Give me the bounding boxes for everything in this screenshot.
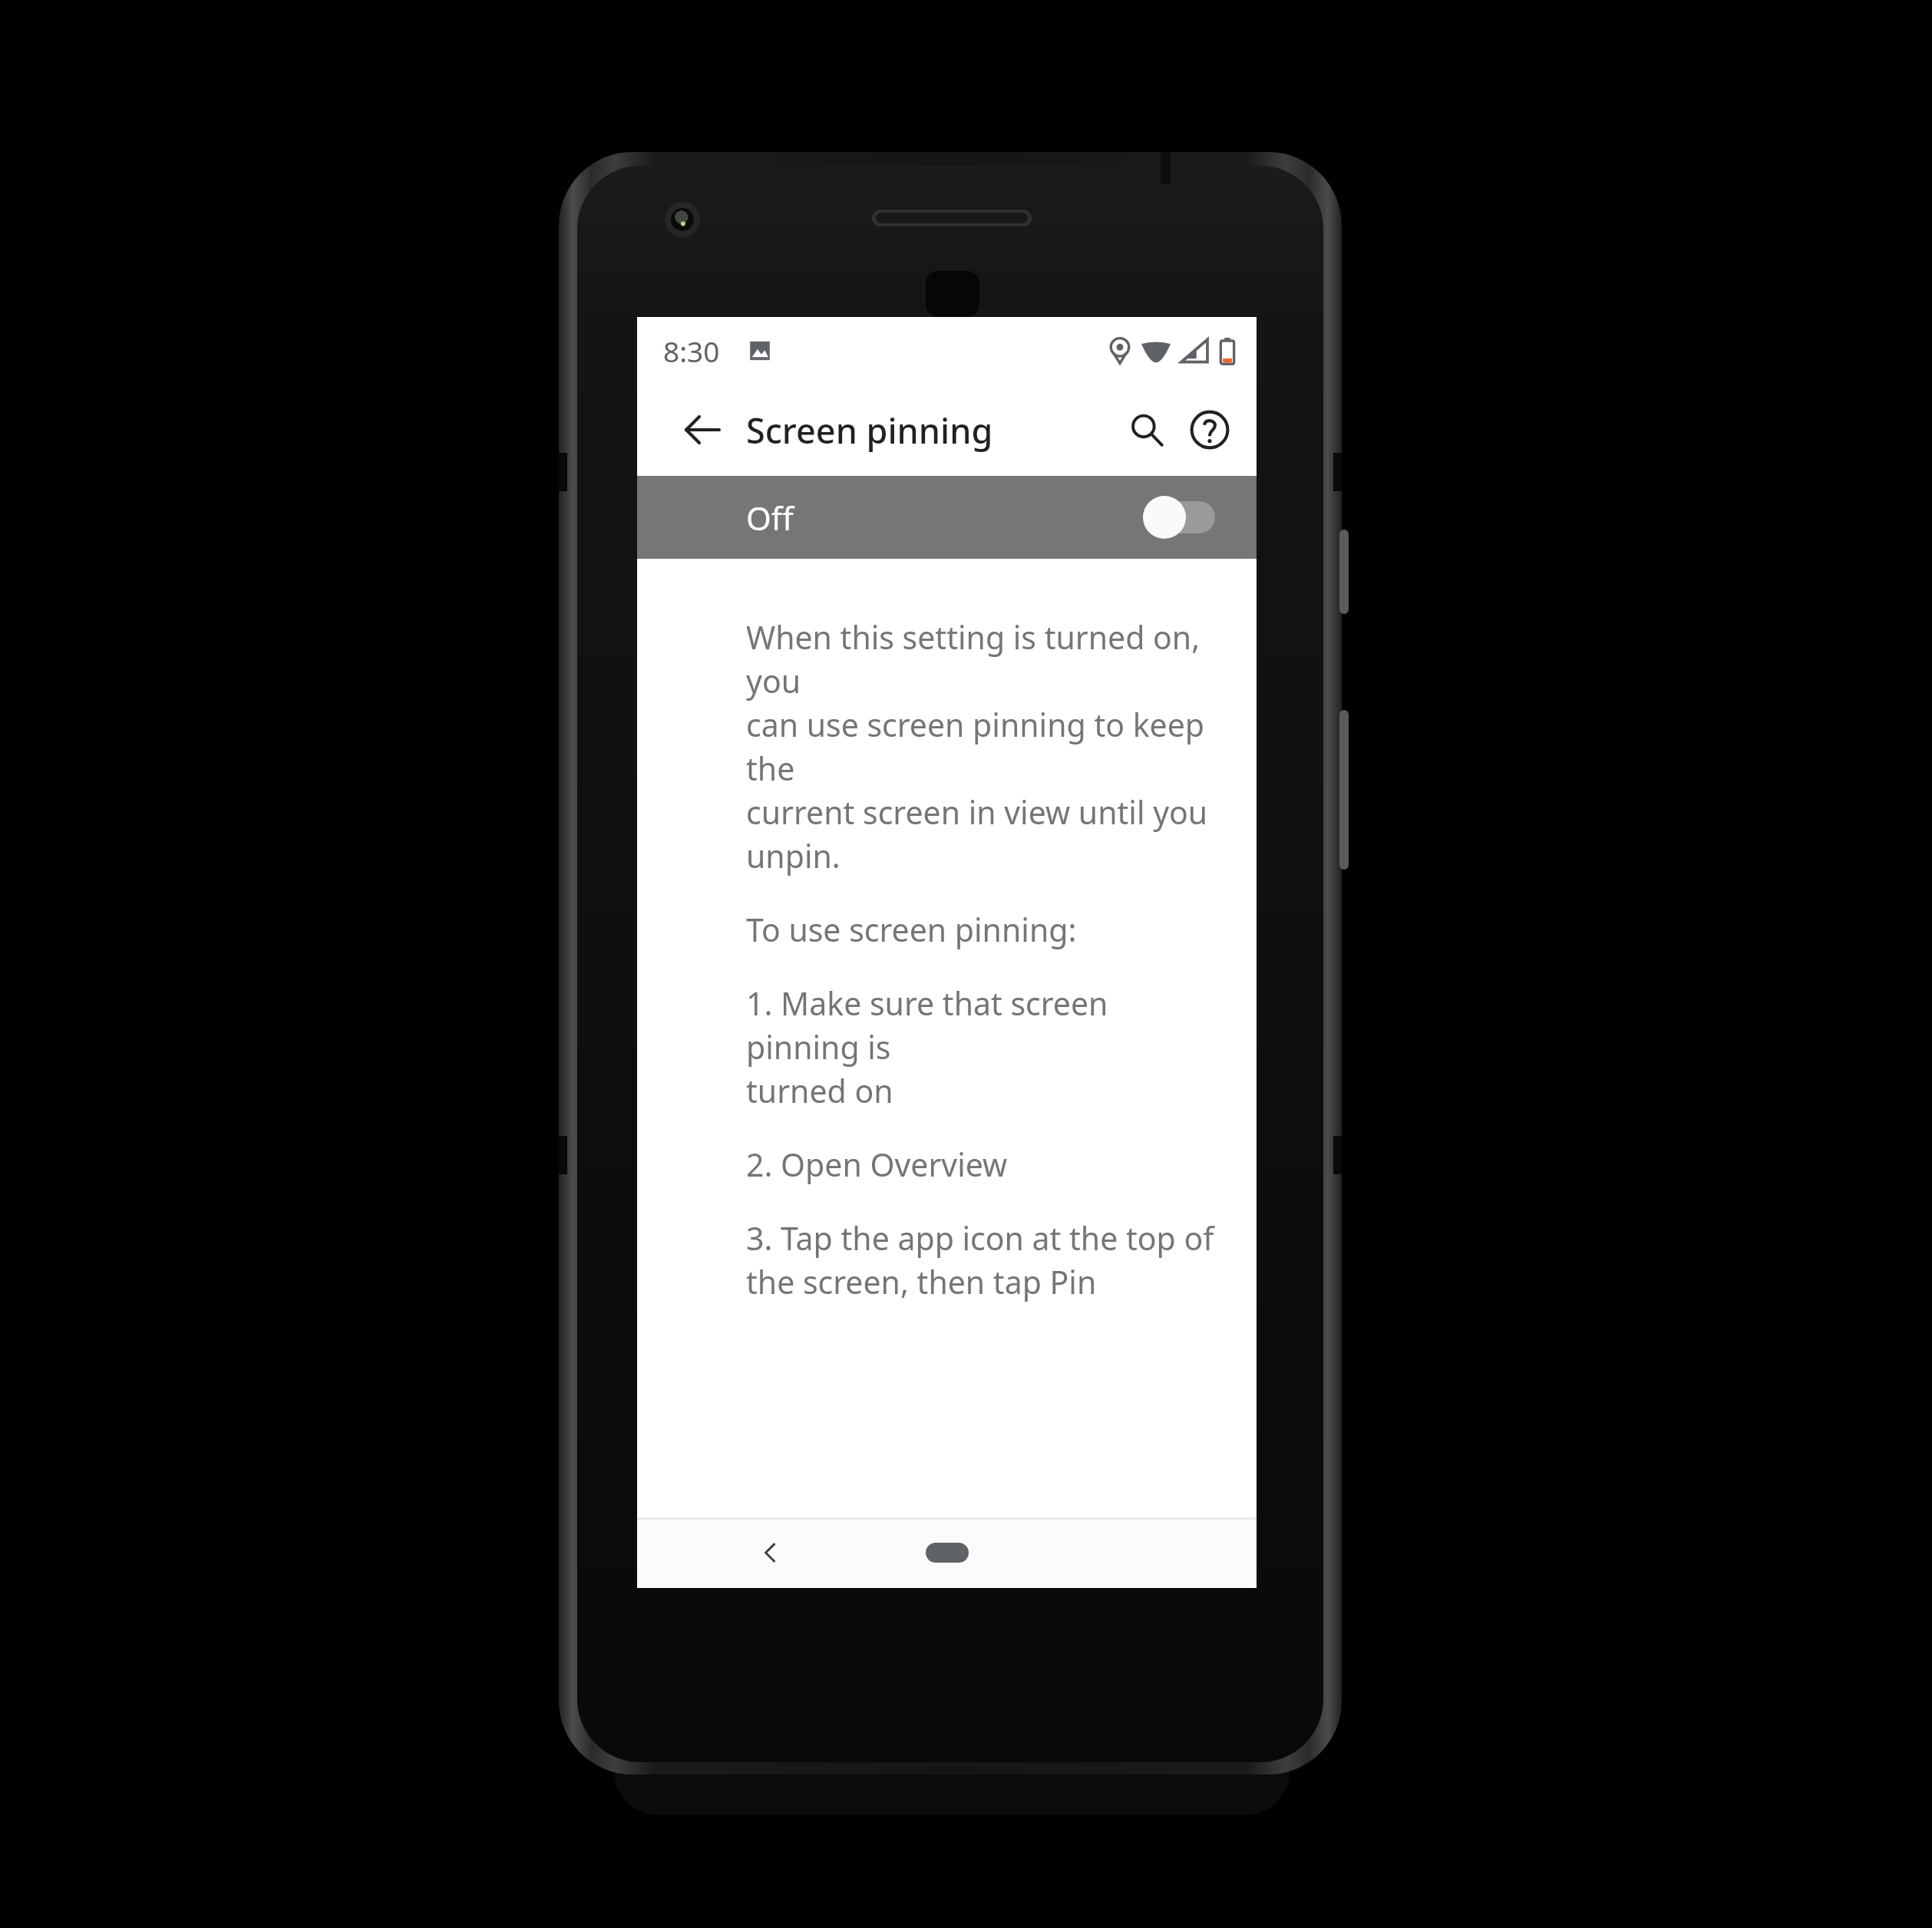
staticText: Off xyxy=(746,496,794,540)
staticText: When this setting is turned on, you can … xyxy=(746,616,1226,877)
staticText: To use screen pinning: xyxy=(746,908,1077,951)
staticText: 8:30 xyxy=(663,332,720,370)
button[interactable]: Help xyxy=(1167,388,1252,472)
button[interactable]: Off xyxy=(637,476,1257,559)
staticText: 3. Tap the app icon at the top of the sc… xyxy=(746,1217,1214,1303)
staticText: 1. Make sure that screen pinning is turn… xyxy=(746,982,1226,1112)
button[interactable]: Search xyxy=(1105,388,1189,472)
button[interactable]: Home xyxy=(897,1524,997,1582)
button[interactable]: Back xyxy=(657,385,748,475)
button[interactable]: Back xyxy=(735,1518,804,1587)
staticText: Screen pinning xyxy=(746,407,993,454)
staticText: 2. Open Overview xyxy=(746,1143,1008,1186)
